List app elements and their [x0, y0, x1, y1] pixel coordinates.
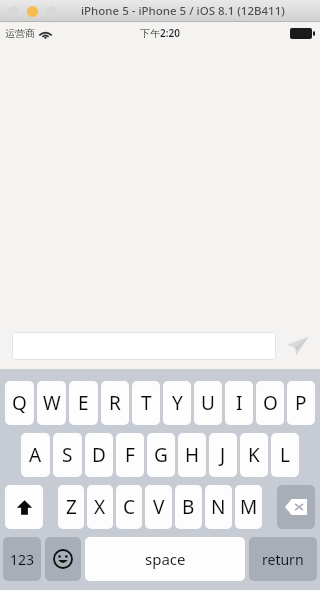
button[interactable]: C — [116, 485, 142, 529]
button[interactable]: X — [87, 485, 113, 529]
staticText: Q — [12, 390, 27, 416]
staticText: H — [185, 442, 200, 468]
staticText: M — [240, 494, 258, 520]
staticText: 运营商 — [5, 27, 35, 40]
staticText: I — [236, 390, 243, 416]
button[interactable]: O — [256, 381, 284, 425]
staticText: P — [295, 390, 307, 416]
staticText: W — [43, 390, 61, 416]
button[interactable]: Z — [58, 485, 84, 529]
button[interactable]: D — [85, 433, 113, 477]
button[interactable]: F — [116, 433, 144, 477]
staticText: T — [141, 390, 152, 416]
staticText: S — [62, 442, 73, 468]
button[interactable]: K — [240, 433, 268, 477]
staticText: V — [153, 494, 165, 520]
button[interactable]: Q — [5, 381, 34, 425]
button[interactable]: Emoji — [45, 537, 81, 581]
staticText: O — [263, 390, 278, 416]
staticText: 下午2:20 — [140, 26, 180, 40]
button[interactable]: space — [85, 537, 245, 581]
button[interactable]: V — [145, 485, 172, 529]
button[interactable]: I — [225, 381, 253, 425]
button[interactable]: return — [249, 537, 317, 581]
button[interactable]: G — [147, 433, 175, 477]
button[interactable]: A — [21, 433, 50, 477]
button[interactable]: U — [194, 381, 222, 425]
button[interactable]: Backspace — [277, 485, 315, 529]
button[interactable]: E — [69, 381, 98, 425]
button[interactable]: J — [209, 433, 237, 477]
staticText: iPhone 5 - iPhone 5 / iOS 8.1 (12B411) — [81, 3, 285, 19]
button[interactable]: W — [37, 381, 66, 425]
button[interactable]: M — [235, 485, 262, 529]
staticText: C — [123, 494, 136, 520]
staticText: R — [109, 390, 121, 416]
staticText: A — [29, 442, 42, 468]
staticText: space — [145, 549, 186, 569]
button[interactable]: T — [132, 381, 160, 425]
button[interactable]: N — [205, 485, 232, 529]
staticText: J — [220, 442, 226, 468]
staticText: G — [154, 442, 168, 468]
staticText: D — [92, 442, 106, 468]
button[interactable]: Y — [163, 381, 191, 425]
staticText: 123 — [10, 550, 35, 569]
staticText: E — [78, 390, 89, 416]
button[interactable]: Send — [276, 322, 320, 370]
staticText: X — [94, 494, 106, 520]
staticText: U — [201, 390, 215, 416]
staticText: Y — [172, 390, 183, 416]
button[interactable] — [12, 332, 276, 360]
button[interactable]: 123 — [3, 537, 41, 581]
staticText: K — [248, 442, 260, 468]
button[interactable]: S — [53, 433, 82, 477]
button[interactable]: H — [178, 433, 206, 477]
staticText: F — [125, 442, 135, 468]
staticText: B — [182, 494, 195, 520]
button[interactable]: P — [287, 381, 315, 425]
button[interactable]: L — [271, 433, 299, 477]
staticText: return — [262, 550, 304, 569]
button[interactable]: R — [101, 381, 129, 425]
staticText: L — [280, 442, 290, 468]
staticText: Z — [66, 494, 77, 520]
staticText: N — [211, 494, 226, 520]
button[interactable]: B — [175, 485, 202, 529]
button[interactable] — [27, 6, 38, 17]
button[interactable]: Shift — [5, 485, 43, 529]
